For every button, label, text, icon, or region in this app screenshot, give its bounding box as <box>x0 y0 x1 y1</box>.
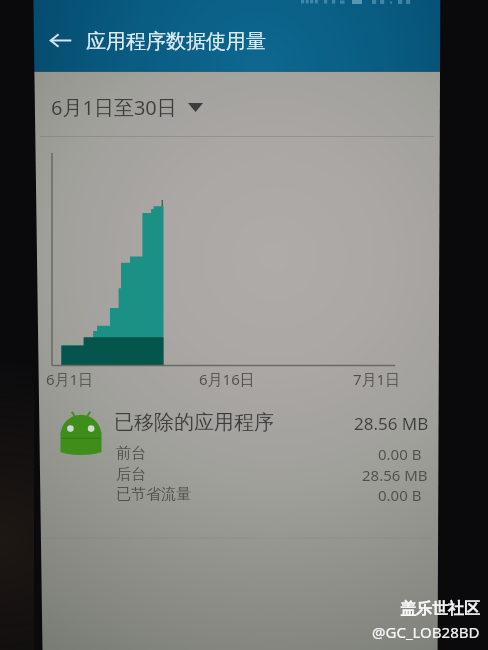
staticText: 已节省流量 <box>116 485 191 504</box>
staticText: 7月1日 <box>353 369 401 389</box>
button[interactable]: Back <box>40 18 82 62</box>
staticText: 盖乐世社区 <box>400 599 480 619</box>
staticText: 0.00 B <box>378 485 422 505</box>
button[interactable]: 6月1日至30日 <box>44 85 220 129</box>
staticText: 0.00 B <box>378 444 422 464</box>
staticText: 28.56 MB <box>354 412 429 435</box>
staticText: 6月1日 <box>46 369 94 389</box>
staticText: 6月16日 <box>199 369 255 389</box>
button[interactable]: 已移除的应用程序 <box>36 398 436 510</box>
staticText: @GC_LOB28BD <box>372 622 480 642</box>
staticText: 28.56 MB <box>362 465 428 485</box>
staticText: 前台 <box>116 444 146 463</box>
staticText: 应用程序数据使用量 <box>86 29 266 54</box>
staticText: 6月1日至30日 <box>51 94 177 121</box>
staticText: 已移除的应用程序 <box>114 410 274 435</box>
staticText: 后台 <box>116 465 146 484</box>
